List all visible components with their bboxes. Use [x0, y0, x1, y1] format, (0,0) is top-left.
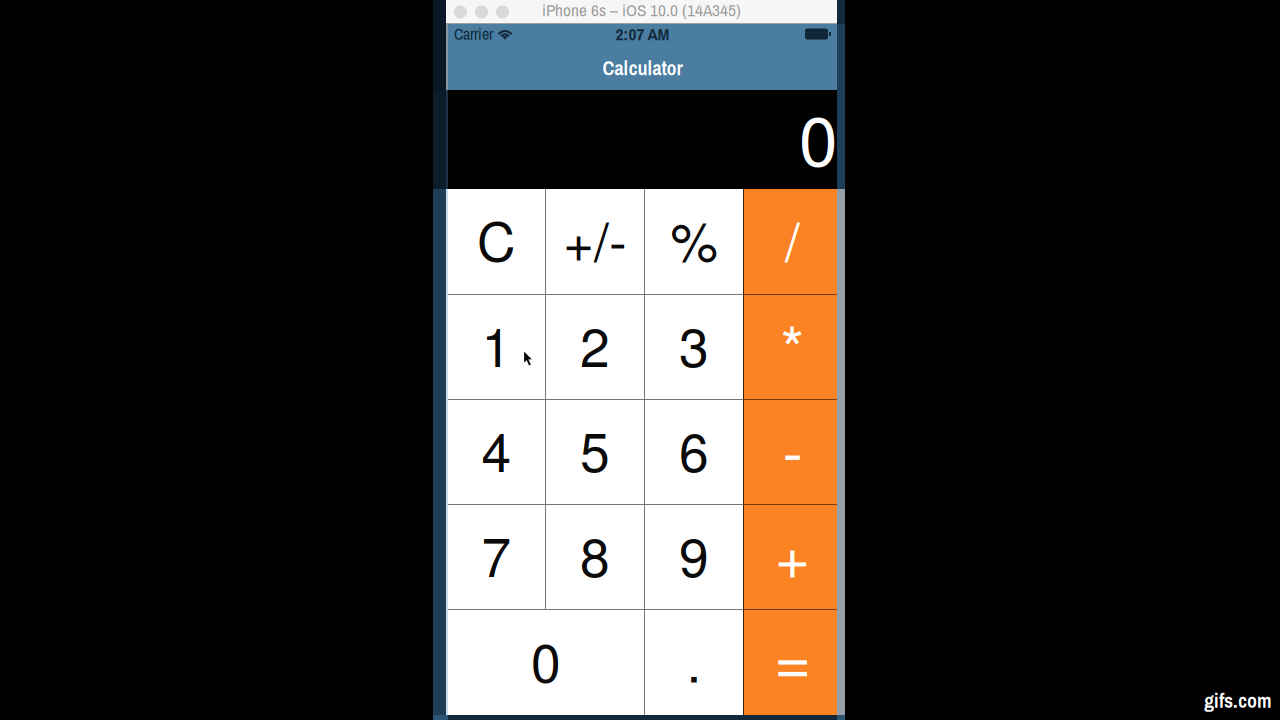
staticText: - [782, 404, 802, 492]
staticText: +/- [563, 200, 627, 277]
staticText: 2 [580, 306, 610, 382]
staticText: = [774, 611, 811, 702]
button[interactable]: . [645, 610, 743, 715]
button[interactable]: 1 [448, 295, 545, 399]
button[interactable]: 6 [645, 400, 743, 504]
staticText: . [686, 621, 701, 698]
button[interactable]: = [744, 610, 837, 715]
staticText: 4 [481, 411, 511, 487]
staticText: Carrier [454, 23, 493, 45]
staticText: 6 [679, 411, 709, 487]
button[interactable]: - [744, 400, 837, 504]
button[interactable]: 4 [448, 400, 545, 504]
button[interactable]: + [744, 505, 837, 609]
staticText: * [780, 301, 804, 389]
staticText: 0 [799, 87, 838, 186]
staticText: 0 [531, 621, 561, 698]
staticText: % [670, 200, 717, 277]
staticText: 7 [481, 516, 511, 592]
staticText: 1 [481, 306, 511, 382]
staticText: Calculator [602, 54, 682, 81]
button[interactable]: * [744, 295, 837, 399]
staticText: 5 [580, 411, 610, 487]
staticText: 3 [679, 306, 709, 382]
staticText: 8 [580, 516, 610, 592]
button[interactable]: 5 [546, 400, 644, 504]
staticText: iPhone 6s – iOS 10.0 (14A345) [542, 0, 741, 22]
button[interactable]: 7 [448, 505, 545, 609]
button[interactable]: +/- [546, 189, 644, 294]
button[interactable]: % [645, 189, 743, 294]
button[interactable]: / [744, 189, 837, 294]
button[interactable]: 9 [645, 505, 743, 609]
staticText: 2:07 AM [615, 22, 669, 46]
staticText: C [477, 200, 516, 277]
button[interactable]: 0 [448, 610, 644, 715]
staticText: 9 [679, 516, 709, 592]
button[interactable]: 8 [546, 505, 644, 609]
button[interactable]: 2 [546, 295, 644, 399]
staticText: + [774, 509, 810, 597]
button[interactable]: 3 [645, 295, 743, 399]
staticText: / [785, 200, 800, 277]
button[interactable]: C [448, 189, 545, 294]
staticText: gifs.com [1204, 687, 1272, 714]
